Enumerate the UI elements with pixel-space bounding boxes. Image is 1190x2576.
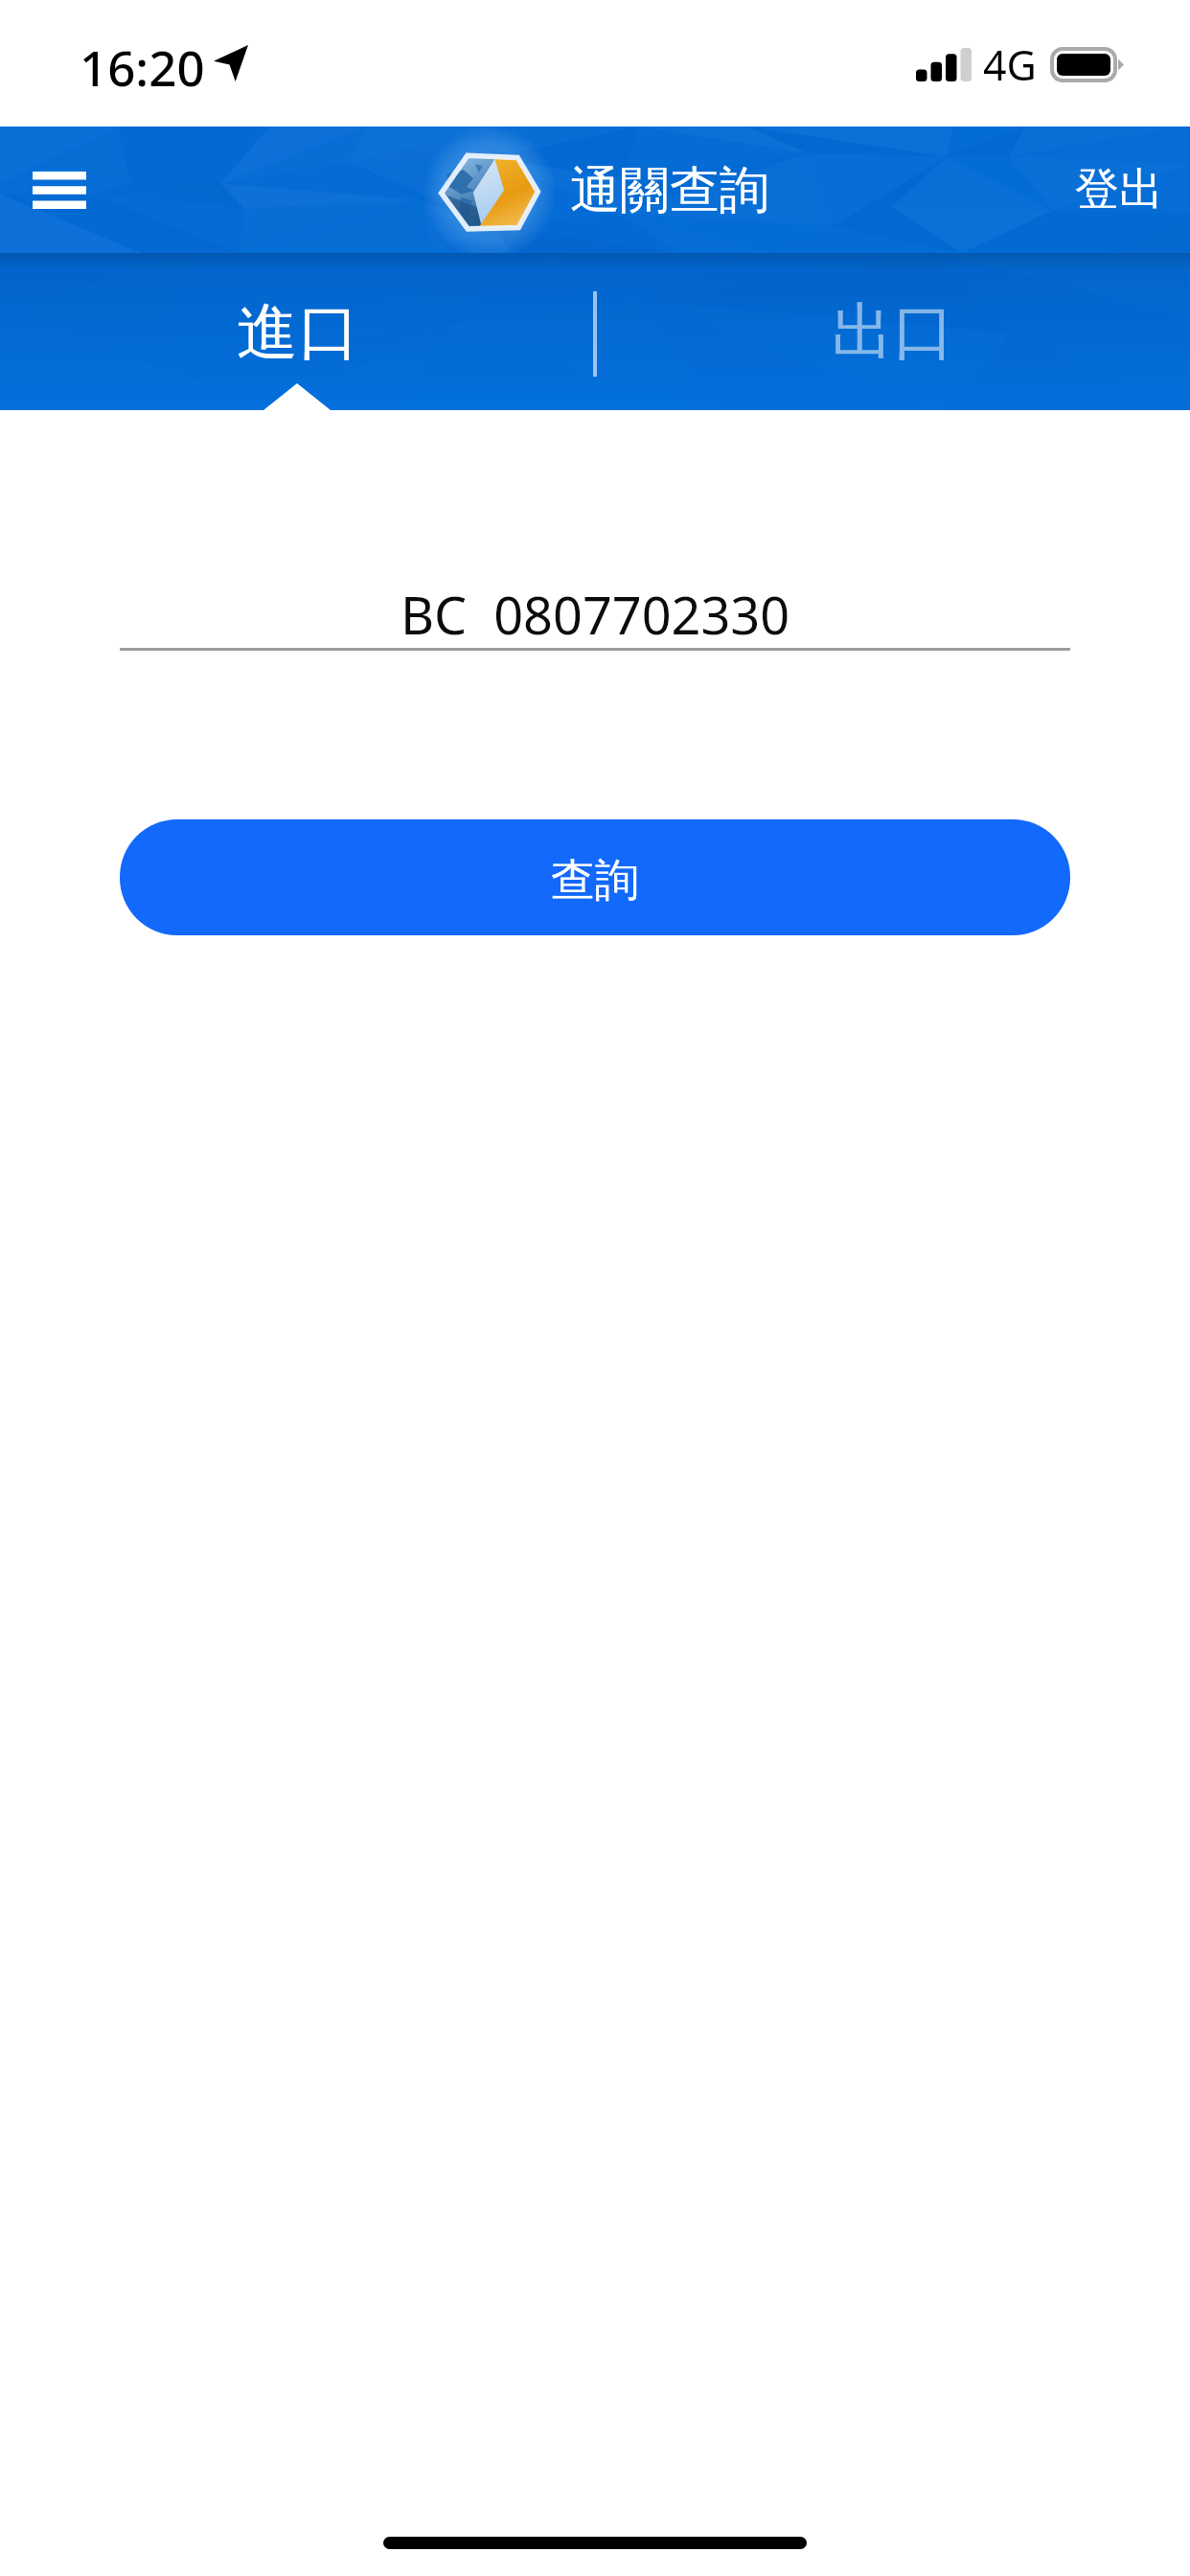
button[interactable]: 登出 — [1046, 141, 1190, 239]
button[interactable]: 查詢 — [120, 819, 1070, 935]
staticText: 通關查詢 — [570, 159, 769, 222]
staticText: 出口 — [832, 293, 954, 371]
staticText: 4G — [983, 36, 1037, 93]
button[interactable]: BC 0807702330 — [120, 579, 1070, 651]
staticText: BC 0807702330 — [120, 579, 1070, 650]
staticText: 查詢 — [551, 853, 639, 908]
button[interactable]: 進口 — [0, 253, 595, 410]
staticText: 進口 — [237, 293, 359, 371]
staticText: 16:20 — [80, 34, 205, 100]
button[interactable]: 出口 — [595, 253, 1190, 410]
staticText: 登出 — [1075, 162, 1163, 218]
button[interactable]: Menu — [11, 142, 107, 238]
